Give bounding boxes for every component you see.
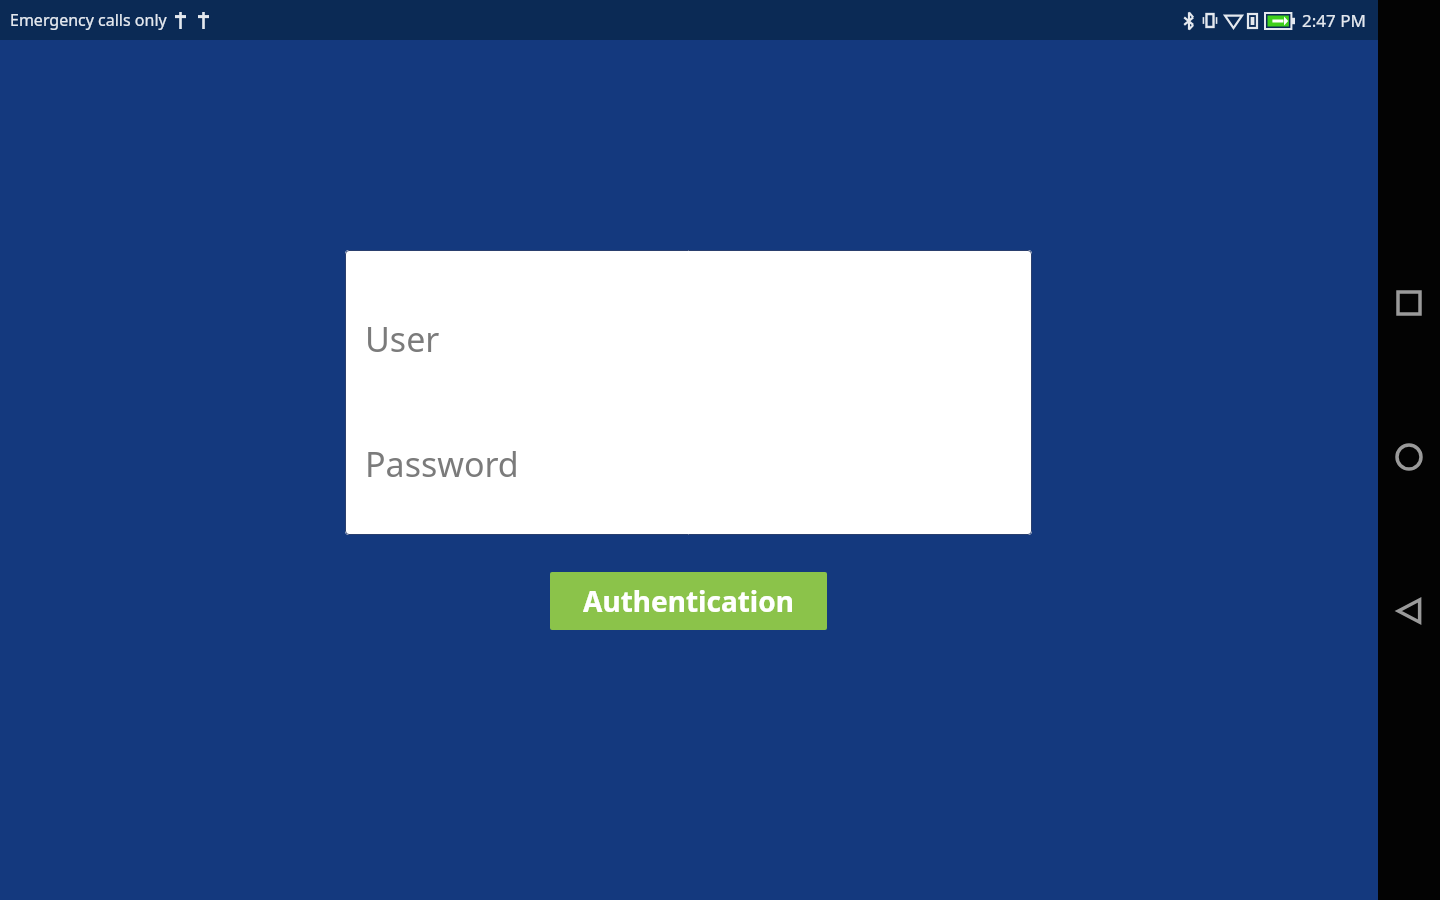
button[interactable]: User — [365, 306, 1012, 372]
staticText: Emergency calls only — [10, 9, 167, 31]
staticText: Authentication — [583, 582, 794, 620]
staticText: User — [365, 316, 440, 362]
staticText: Password — [365, 441, 519, 487]
button[interactable]: Back — [1378, 580, 1440, 642]
button[interactable]: Home — [1378, 426, 1440, 488]
button[interactable]: Authentication — [550, 572, 827, 630]
staticText: 2:47 PM — [1302, 9, 1366, 32]
button[interactable]: Recents — [1378, 272, 1440, 334]
button[interactable]: Password — [365, 431, 1012, 497]
